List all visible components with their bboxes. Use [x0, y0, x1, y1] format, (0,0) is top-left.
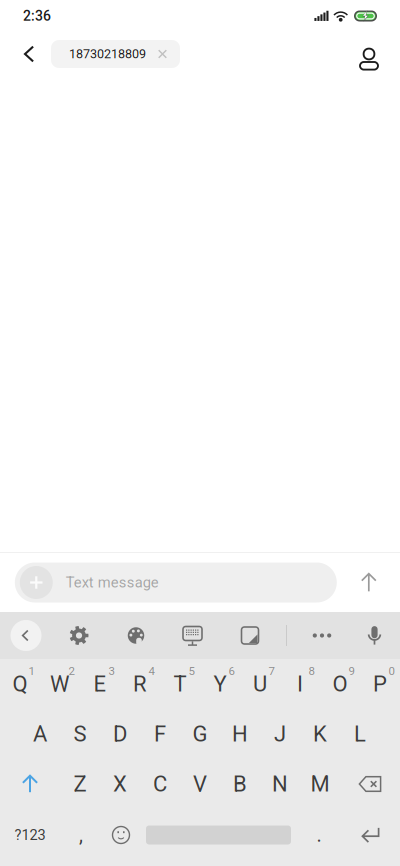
- button[interactable]: Voice input: [349, 612, 400, 659]
- button[interactable]: Return: [341, 809, 400, 861]
- staticText: S: [73, 721, 86, 747]
- staticText: Y: [213, 671, 226, 697]
- staticText: 4: [148, 664, 154, 678]
- staticText: W: [50, 671, 70, 697]
- staticText: R: [133, 671, 147, 697]
- button[interactable]: F: [140, 709, 180, 759]
- button[interactable]: A: [20, 709, 60, 759]
- button[interactable]: H: [220, 709, 260, 759]
- button[interactable]: Text message: [15, 562, 337, 602]
- staticText: D: [113, 721, 127, 747]
- staticText: 8: [308, 664, 314, 678]
- staticText: Z: [73, 771, 86, 797]
- staticText: 0: [388, 664, 394, 678]
- button[interactable]: Hide keyboard: [0, 612, 52, 659]
- button[interactable]: D: [100, 709, 140, 759]
- staticText: J: [274, 721, 286, 747]
- button[interactable]: B: [220, 759, 260, 809]
- button[interactable]: T: [160, 659, 200, 709]
- staticText: L: [354, 721, 366, 747]
- button[interactable]: U: [240, 659, 280, 709]
- button[interactable]: Back: [7, 32, 51, 76]
- staticText: C: [153, 771, 167, 797]
- button[interactable]: S: [60, 709, 100, 759]
- button[interactable]: Send: [345, 558, 393, 606]
- button[interactable]: Backspace: [340, 759, 400, 809]
- staticText: B: [233, 771, 247, 797]
- button[interactable]: .: [297, 809, 341, 861]
- button[interactable]: C: [140, 759, 180, 809]
- staticText: Q: [12, 671, 27, 697]
- staticText: I: [297, 671, 303, 697]
- button[interactable]: E: [80, 659, 120, 709]
- button[interactable]: M: [300, 759, 340, 809]
- staticText: K: [313, 721, 327, 747]
- button[interactable]: Q: [0, 659, 40, 709]
- staticText: ?123: [14, 826, 45, 843]
- staticText: M: [310, 771, 329, 797]
- button[interactable]: Settings: [52, 612, 106, 659]
- staticText: V: [193, 771, 207, 797]
- button[interactable]: J: [260, 709, 300, 759]
- staticText: N: [272, 771, 288, 797]
- button[interactable]: Y: [200, 659, 240, 709]
- staticText: 6: [228, 664, 234, 678]
- staticText: ,: [79, 823, 83, 847]
- button[interactable]: R: [120, 659, 160, 709]
- staticText: Text message: [66, 574, 159, 591]
- staticText: 7: [268, 664, 274, 678]
- staticText: P: [373, 671, 387, 697]
- staticText: T: [173, 671, 186, 697]
- staticText: G: [192, 721, 207, 747]
- button[interactable]: Floating keyboard: [219, 612, 281, 659]
- button[interactable]: G: [180, 709, 220, 759]
- staticText: 9: [348, 664, 354, 678]
- staticText: 3: [108, 664, 114, 678]
- staticText: A: [33, 721, 47, 747]
- button[interactable]: More options: [295, 612, 349, 659]
- button[interactable]: I: [280, 659, 320, 709]
- button[interactable]: K: [300, 709, 340, 759]
- button[interactable]: Shift: [0, 759, 60, 809]
- staticText: 2:36: [23, 8, 51, 24]
- staticText: 18730218809: [69, 47, 146, 61]
- button[interactable]: O: [320, 659, 360, 709]
- button[interactable]: Contacts: [349, 32, 389, 76]
- button[interactable]: N: [260, 759, 300, 809]
- staticText: F: [154, 721, 166, 747]
- button[interactable]: Emoji: [102, 809, 140, 861]
- button[interactable]: W: [40, 659, 80, 709]
- button[interactable]: Z: [60, 759, 100, 809]
- button[interactable]: Themes: [106, 612, 166, 659]
- staticText: U: [253, 671, 267, 697]
- staticText: 2: [68, 664, 74, 678]
- staticText: O: [332, 671, 347, 697]
- staticText: .: [316, 823, 321, 847]
- button[interactable]: Keyboard layout: [166, 612, 219, 659]
- button[interactable]: V: [180, 759, 220, 809]
- button[interactable]: P: [360, 659, 400, 709]
- staticText: E: [93, 671, 106, 697]
- button[interactable]: Space: [140, 809, 297, 861]
- button[interactable]: 18730218809: [51, 40, 180, 68]
- staticText: H: [232, 721, 248, 747]
- button[interactable]: ?123: [0, 809, 60, 861]
- staticText: 1: [28, 664, 34, 678]
- staticText: X: [113, 771, 127, 797]
- button[interactable]: L: [340, 709, 380, 759]
- staticText: 5: [188, 664, 194, 678]
- button[interactable]: ,: [60, 809, 102, 861]
- button[interactable]: X: [100, 759, 140, 809]
